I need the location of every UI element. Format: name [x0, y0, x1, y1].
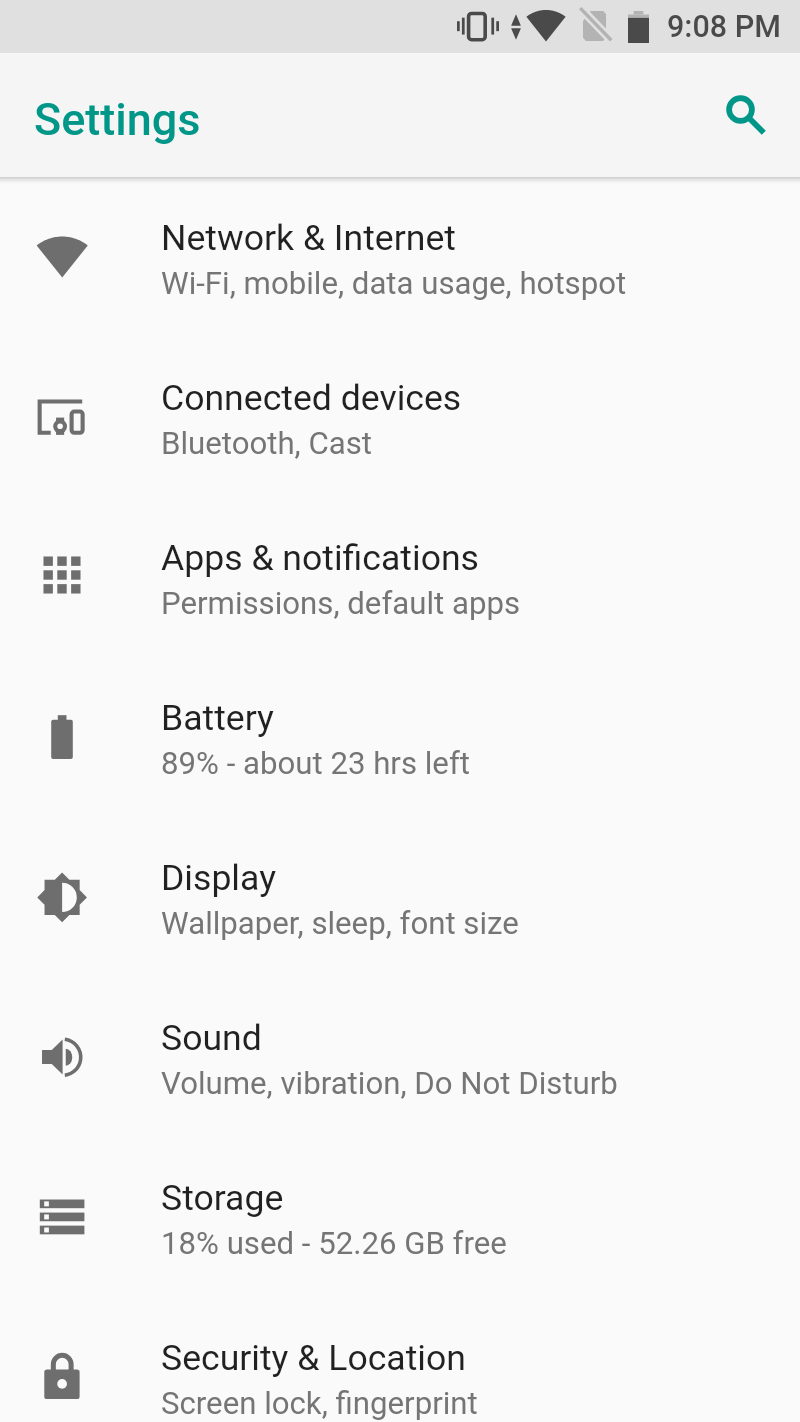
button[interactable]: Network & Internet — [0, 177, 800, 337]
button[interactable]: Storage — [0, 1137, 800, 1297]
button[interactable]: Display — [0, 817, 800, 977]
staticText: 89% - about 23 hrs left — [161, 745, 470, 782]
button[interactable]: Apps & notifications — [0, 497, 800, 657]
staticText: Wi-Fi, mobile, data usage, hotspot — [161, 265, 627, 302]
button[interactable]: Connected devices — [0, 337, 800, 497]
staticText: Volume, vibration, Do Not Disturb — [161, 1065, 618, 1102]
staticText: Wallpaper, sleep, font size — [161, 905, 519, 942]
button[interactable]: Security & Location — [0, 1297, 800, 1422]
staticText: 9:08 PM — [667, 9, 781, 45]
staticText: Storage — [161, 1177, 284, 1219]
button[interactable]: Search — [718, 87, 779, 148]
staticText: Network & Internet — [161, 217, 456, 259]
staticText: Screen lock, fingerprint — [161, 1385, 478, 1422]
staticText: 18% used - 52.26 GB free — [161, 1225, 507, 1262]
staticText: Settings — [34, 93, 201, 146]
staticText: Battery — [161, 697, 274, 739]
staticText: Sound — [161, 1017, 262, 1059]
staticText: Display — [161, 857, 276, 899]
button[interactable]: Battery — [0, 657, 800, 817]
staticText: Connected devices — [161, 377, 462, 419]
staticText: Apps & notifications — [161, 537, 479, 579]
staticText: Bluetooth, Cast — [161, 425, 373, 462]
button[interactable]: Sound — [0, 977, 800, 1137]
staticText: Permissions, default apps — [161, 585, 521, 622]
staticText: Security & Location — [161, 1337, 466, 1379]
